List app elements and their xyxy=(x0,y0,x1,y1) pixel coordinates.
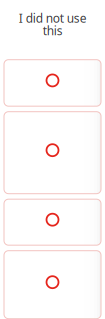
button[interactable]: Mark as not used xyxy=(4,251,101,319)
staticText: I did not use this xyxy=(18,10,86,39)
button[interactable]: Mark as not used xyxy=(4,199,101,245)
button[interactable]: Mark as not used xyxy=(4,60,101,106)
button[interactable]: Mark as not used xyxy=(4,112,101,194)
